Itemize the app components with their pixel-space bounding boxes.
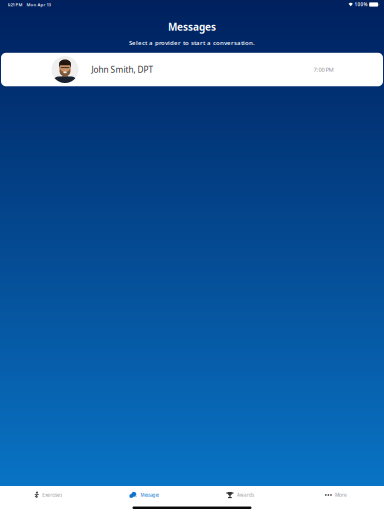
staticText: 7:00 PM	[313, 66, 333, 73]
staticText: 100%	[354, 1, 367, 8]
button[interactable]: Messages	[96, 486, 192, 503]
staticText: Exercises	[42, 492, 62, 498]
button[interactable]: John Smith, DPT	[1, 53, 383, 86]
staticText: Select a provider to start a conversatio…	[129, 39, 255, 47]
staticText: Messages	[140, 492, 159, 498]
staticText: 6:21 PM	[7, 2, 22, 7]
staticText: Awards	[237, 492, 254, 498]
button[interactable]: More	[288, 486, 384, 503]
staticText: More	[335, 492, 347, 498]
button[interactable]: Awards	[192, 486, 288, 503]
staticText: Mon Apr 13	[26, 2, 50, 7]
button[interactable]: Exercises	[0, 486, 96, 503]
staticText: John Smith, DPT	[91, 64, 153, 75]
staticText: Messages	[168, 20, 216, 34]
